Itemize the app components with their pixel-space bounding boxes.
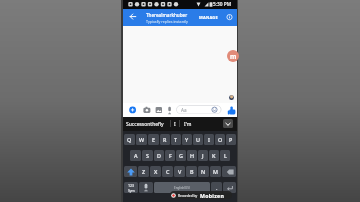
staticText: L: [224, 152, 227, 159]
button[interactable]: [155, 106, 163, 114]
staticText: Aa: [181, 107, 187, 113]
button[interactable]: R: [160, 134, 170, 145]
button[interactable]: N: [198, 166, 209, 177]
button[interactable]: [139, 182, 153, 193]
button[interactable]: 123: [124, 182, 138, 193]
staticText: N: [201, 168, 206, 175]
staticText: Typically replies instantly: [146, 19, 188, 24]
staticText: Y: [185, 136, 189, 143]
button[interactable]: A: [130, 150, 141, 161]
button[interactable]: Y: [182, 134, 192, 145]
staticText: R: [163, 136, 167, 143]
button[interactable]: U: [193, 134, 203, 145]
staticText: S: [146, 152, 149, 159]
staticText: A: [134, 152, 138, 159]
staticText: Recorded by: [178, 193, 198, 197]
button[interactable]: English(US): [154, 182, 210, 193]
staticText: K: [212, 152, 216, 159]
button[interactable]: P: [226, 134, 236, 145]
button[interactable]: [223, 11, 235, 23]
staticText: Successonthefly: [126, 121, 164, 128]
button[interactable]: C: [162, 166, 173, 177]
staticText: I: [174, 121, 176, 128]
staticText: T: [174, 136, 178, 143]
staticText: Q: [127, 136, 132, 143]
staticText: P: [229, 136, 233, 143]
staticText: Therealmarkhuber: [146, 12, 188, 18]
button[interactable]: T: [171, 134, 181, 145]
button[interactable]: K: [209, 150, 219, 161]
staticText: E: [152, 136, 156, 143]
staticText: 123: [128, 183, 135, 188]
button[interactable]: [126, 11, 138, 23]
button[interactable]: Therealmarkhuber: [139, 9, 195, 26]
button[interactable]: X: [150, 166, 161, 177]
button[interactable]: W: [136, 134, 147, 145]
staticText: m: [230, 52, 237, 61]
staticText: MANAGE: [199, 15, 218, 20]
button[interactable]: Aa: [176, 105, 222, 114]
button[interactable]: M: [210, 166, 221, 177]
button[interactable]: D: [154, 150, 164, 161]
button[interactable]: G: [176, 150, 186, 161]
staticText: Sym: [128, 188, 135, 193]
staticText: X: [154, 168, 158, 175]
button[interactable]: [124, 166, 137, 177]
staticText: H: [190, 152, 195, 159]
button[interactable]: [227, 106, 236, 115]
button[interactable]: .: [211, 182, 222, 193]
staticText: B: [190, 168, 194, 175]
button[interactable]: F: [165, 150, 175, 161]
button[interactable]: [129, 106, 136, 113]
staticText: C: [166, 168, 170, 175]
button[interactable]: [223, 182, 236, 193]
staticText: U: [196, 136, 200, 143]
staticText: I: [208, 136, 210, 143]
button[interactable]: [223, 119, 233, 128]
button[interactable]: Recorded by: [170, 191, 232, 199]
button[interactable]: B: [186, 166, 197, 177]
staticText: F: [169, 152, 172, 159]
button[interactable]: J: [198, 150, 208, 161]
button[interactable]: L: [220, 150, 230, 161]
staticText: D: [157, 152, 161, 159]
button[interactable]: V: [174, 166, 185, 177]
button[interactable]: S: [142, 150, 153, 161]
button[interactable]: Z: [138, 166, 149, 177]
staticText: V: [178, 168, 182, 175]
button[interactable]: Q: [124, 134, 135, 145]
staticText: Z: [142, 168, 146, 175]
button[interactable]: O: [215, 134, 225, 145]
staticText: M: [213, 168, 218, 175]
button[interactable]: I: [204, 134, 214, 145]
button[interactable]: [143, 106, 151, 114]
button[interactable]: [222, 166, 236, 177]
staticText: 5:30 PM: [213, 1, 232, 8]
staticText: English(US): [174, 186, 190, 190]
staticText: O: [218, 136, 223, 143]
button[interactable]: H: [187, 150, 197, 161]
staticText: I'm: [184, 121, 192, 128]
staticText: W: [139, 136, 145, 143]
button[interactable]: MANAGE: [197, 9, 220, 26]
button[interactable]: [166, 106, 173, 115]
staticText: Mobizen: [200, 192, 225, 199]
staticText: .: [216, 184, 218, 191]
staticText: G: [179, 152, 183, 159]
staticText: J: [202, 152, 204, 159]
button[interactable]: E: [148, 134, 159, 145]
